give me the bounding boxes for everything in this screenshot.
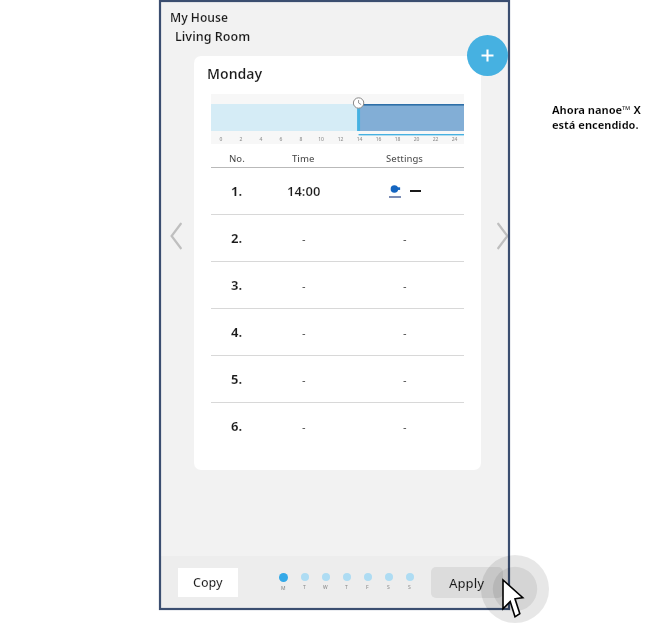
button[interactable]: Next day (492, 219, 514, 253)
staticText: 6 (271, 136, 291, 143)
staticText: 4 (251, 136, 271, 143)
staticText: 12 (331, 136, 350, 143)
staticText: M (281, 585, 286, 592)
button[interactable]: Previous day (165, 219, 187, 253)
button[interactable]: Copy (178, 568, 238, 597)
button[interactable]: W (315, 573, 336, 591)
button[interactable]: 5. (211, 356, 464, 402)
staticText: 18 (388, 136, 407, 143)
button[interactable]: M (273, 573, 294, 592)
staticText: My House (170, 9, 228, 25)
staticText: - (403, 419, 407, 434)
staticText: - (302, 372, 306, 387)
staticText: 2. (231, 229, 243, 247)
button[interactable]: T (294, 573, 315, 591)
staticText: - (302, 231, 306, 246)
staticText: 16 (369, 136, 388, 143)
staticText: 5. (231, 370, 243, 388)
staticText: 3. (231, 276, 243, 294)
staticText: S (408, 584, 411, 591)
staticText: Settings (386, 152, 423, 165)
staticText: Apply (449, 574, 485, 592)
staticText: Living Room (175, 28, 251, 45)
staticText: - (403, 278, 407, 293)
staticText: 14 (350, 136, 369, 143)
staticText: Ahora nanoe™ X (552, 102, 641, 117)
button[interactable]: 3. (211, 262, 464, 308)
staticText: 10 (311, 136, 331, 143)
staticText: T (303, 584, 306, 591)
staticText: - (302, 325, 306, 340)
staticText: 22 (426, 136, 445, 143)
staticText: W (323, 584, 328, 591)
staticText: - (302, 419, 306, 434)
staticText: 1. (231, 182, 243, 200)
button[interactable]: F (357, 573, 378, 591)
staticText: Time (292, 152, 315, 165)
staticText: - (403, 325, 407, 340)
button[interactable]: S (399, 573, 420, 591)
staticText: Monday (207, 64, 263, 83)
staticText: 4. (231, 323, 243, 341)
staticText: está encendido. (552, 117, 639, 132)
staticText: 24 (445, 136, 464, 143)
staticText: - (403, 372, 407, 387)
staticText: 6. (231, 417, 243, 435)
staticText: 14:00 (287, 182, 321, 200)
staticText: S (387, 584, 390, 591)
staticText: - (403, 231, 407, 246)
button[interactable]: 1. (211, 168, 464, 214)
staticText: - (302, 278, 306, 293)
button[interactable]: S (378, 573, 399, 591)
button[interactable]: T (336, 573, 357, 591)
button[interactable]: Apply (431, 567, 503, 598)
staticText: 0 (211, 136, 231, 143)
staticText: 20 (407, 136, 426, 143)
staticText: 2 (231, 136, 251, 143)
staticText: T (345, 584, 348, 591)
button[interactable]: 2. (211, 215, 464, 261)
staticText: No. (229, 152, 245, 165)
button[interactable]: Add schedule (467, 35, 508, 76)
button[interactable]: 4. (211, 309, 464, 355)
staticText: Copy (193, 574, 223, 591)
staticText: 8 (291, 136, 311, 143)
staticText: F (366, 584, 369, 591)
button[interactable]: 6. (211, 403, 464, 449)
